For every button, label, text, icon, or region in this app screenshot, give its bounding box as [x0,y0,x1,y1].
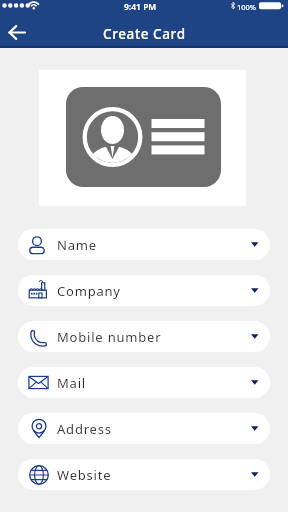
button[interactable]: Address [18,413,270,444]
staticText: Name [57,236,97,254]
staticText: Create Card [103,25,186,43]
button[interactable]: Name [18,229,270,260]
staticText: Website [57,466,112,484]
button[interactable]: Company [18,275,270,306]
staticText: Address [57,420,112,438]
button[interactable]: Website [18,459,270,490]
staticText: 9:41 PM [124,1,157,13]
staticText: 100% [237,2,257,12]
staticText: Mobile number [57,328,162,346]
staticText: Company [57,282,121,300]
button[interactable]: Mail [18,367,270,398]
staticText: Mail [57,374,86,392]
button[interactable] [0,16,40,48]
button[interactable]: Mobile number [18,321,270,352]
